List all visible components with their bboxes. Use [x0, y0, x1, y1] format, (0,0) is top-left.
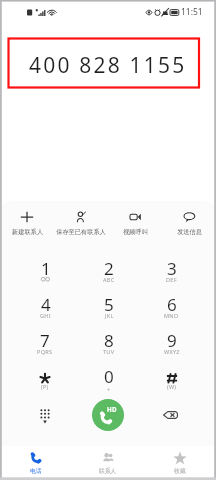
button[interactable]: 3 — [140, 257, 203, 293]
button[interactable]: Call — [92, 399, 124, 431]
button[interactable]: 1 — [13, 257, 77, 293]
button[interactable]: (W) — [140, 365, 203, 401]
staticText: 电话 — [30, 467, 42, 474]
button[interactable]: 7 — [13, 329, 77, 365]
staticText: DEF — [166, 276, 177, 283]
staticText: PQRS — [37, 348, 53, 355]
staticText: 保存至已有联系人 — [56, 228, 106, 236]
staticText: 7 — [40, 329, 50, 352]
button[interactable]: 收藏 — [144, 446, 216, 480]
button[interactable]: 2 — [77, 257, 140, 293]
button[interactable]: Hide keypad — [31, 401, 59, 429]
staticText: 视频呼叫 — [123, 228, 148, 236]
button[interactable]: 发送信息 — [162, 212, 216, 240]
button[interactable]: 9 — [140, 329, 203, 365]
staticText: 0 — [104, 365, 114, 388]
button[interactable]: 5 — [77, 293, 140, 329]
staticText: GHI — [40, 312, 51, 319]
button[interactable]: 0 — [77, 365, 140, 401]
staticText: 2 — [104, 257, 114, 280]
staticText: 6 — [167, 293, 177, 316]
button[interactable]: 6 — [140, 293, 203, 329]
button[interactable]: 保存至已有联系人 — [54, 212, 108, 240]
button[interactable]: 4 — [13, 293, 77, 329]
staticText: (W) — [167, 383, 177, 390]
staticText: + — [107, 386, 111, 393]
staticText: (P) — [41, 383, 49, 390]
button[interactable]: (P) — [13, 365, 77, 401]
button[interactable]: 联系人 — [72, 446, 144, 480]
staticText: 5 — [104, 293, 114, 316]
button[interactable]: 8 — [77, 329, 140, 365]
staticText: WXYZ — [164, 348, 180, 355]
staticText: 4 — [41, 293, 51, 316]
staticText: HD — [107, 405, 117, 413]
staticText: 400 828 1155 — [29, 51, 187, 80]
staticText: 11:51 — [181, 6, 203, 18]
staticText: 联系人 — [99, 467, 117, 474]
button[interactable]: 电话 — [0, 446, 72, 480]
staticText: 发送信息 — [177, 228, 202, 236]
staticText: MNO — [164, 312, 179, 319]
button[interactable]: 视频呼叫 — [108, 212, 162, 240]
staticText: TUV — [103, 348, 115, 355]
staticText: 收藏 — [174, 467, 186, 474]
staticText: 1 — [41, 257, 51, 280]
staticText: ABC — [103, 276, 115, 283]
staticText: 新建联系人 — [12, 228, 43, 236]
staticText: JKL — [105, 312, 114, 319]
staticText: 9 — [167, 329, 177, 352]
staticText: 8 — [104, 329, 114, 352]
button[interactable]: Backspace — [156, 401, 184, 429]
staticText: 3 — [167, 257, 177, 280]
button[interactable]: 新建联系人 — [0, 212, 54, 240]
